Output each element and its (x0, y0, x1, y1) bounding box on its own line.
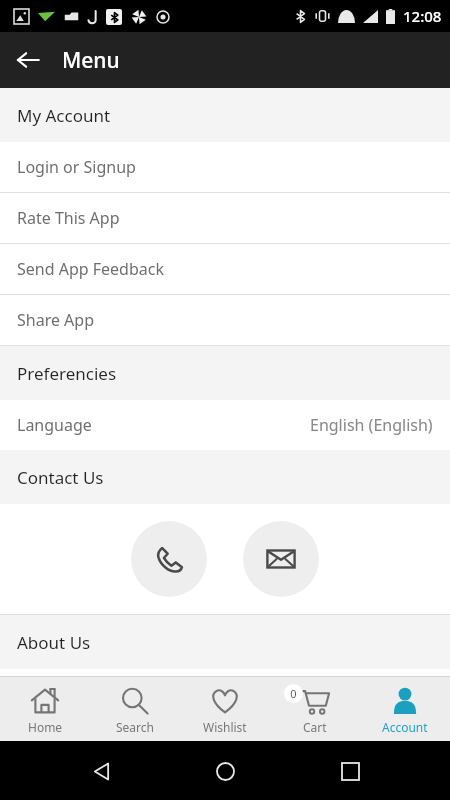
button[interactable]: Home (0, 677, 90, 741)
staticText: Contact Us (17, 466, 104, 489)
staticText: Search (116, 719, 154, 735)
button[interactable]: Send App Feedback (0, 244, 450, 294)
button[interactable]: Call us (131, 521, 207, 597)
staticText: Rate This App (17, 207, 120, 229)
staticText: About Us (17, 631, 91, 654)
staticText: Language (17, 414, 92, 436)
button[interactable]: Account (360, 677, 450, 741)
button[interactable]: Email us (243, 521, 319, 597)
staticText: Share App (17, 309, 95, 331)
staticText: Home (28, 719, 63, 735)
button[interactable]: Back (6, 38, 50, 82)
button[interactable]: Search (90, 677, 180, 741)
button[interactable]: 0 (270, 677, 360, 741)
button[interactable]: Home (201, 747, 249, 795)
button[interactable]: Recents (326, 747, 374, 795)
staticText: Cart (303, 719, 327, 735)
button[interactable]: Rate This App (0, 193, 450, 243)
staticText: 12:08 (403, 6, 442, 26)
button[interactable]: Back (77, 747, 125, 795)
staticText: Preferencies (17, 362, 117, 385)
button[interactable]: Language (0, 400, 450, 450)
staticText: Menu (62, 46, 120, 75)
staticText: Account (382, 719, 428, 735)
button[interactable]: Wishlist (180, 677, 270, 741)
staticText: Wishlist (203, 719, 247, 735)
staticText: 0 (290, 686, 297, 701)
staticText: English (English) (310, 414, 433, 436)
button[interactable]: Share App (0, 295, 450, 345)
staticText: Send App Feedback (17, 258, 164, 280)
button[interactable]: Login or Signup (0, 142, 450, 192)
staticText: Login or Signup (17, 156, 136, 178)
staticText: My Account (17, 104, 111, 127)
